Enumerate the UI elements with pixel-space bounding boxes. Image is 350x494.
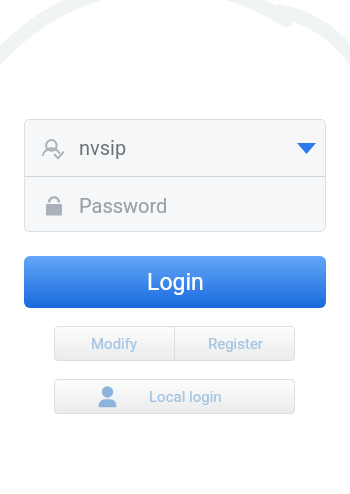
button[interactable]: Register	[175, 326, 295, 361]
staticText: Local login	[149, 388, 222, 406]
button[interactable]: Modify	[54, 326, 174, 361]
staticText: Login	[147, 269, 204, 296]
button[interactable]: Local login	[54, 379, 295, 414]
staticText: Register	[208, 335, 263, 353]
button[interactable]: Login	[24, 256, 326, 308]
button[interactable]: Show saved accounts	[286, 123, 326, 173]
button[interactable]: nvsip	[24, 119, 326, 176]
staticText: nvsip	[79, 136, 127, 159]
staticText: Modify	[91, 335, 138, 353]
button[interactable]: Password	[24, 177, 326, 231]
staticText: Password	[79, 194, 168, 217]
